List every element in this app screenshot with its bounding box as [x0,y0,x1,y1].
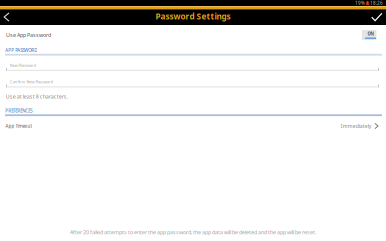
staticText: After 20 failed attempts to enter the ap… [70,229,316,236]
staticText: Immediately [341,122,372,129]
button[interactable]: Back [0,9,16,25]
staticText: Use at least 8 characters. [6,93,68,100]
staticText: App Timeout [5,123,32,129]
staticText: 19% [355,0,365,6]
staticText: ON [368,31,374,37]
staticText: APP PASSWORD [5,47,37,53]
button[interactable]: Use App Password [0,27,386,43]
staticText: New Password [10,62,37,68]
button[interactable]: Save [365,9,386,25]
button[interactable]: Confirm New Password [5,79,379,88]
staticText: PREFERENCES [5,108,32,114]
staticText: 18:26 [370,0,383,6]
button[interactable]: App Timeout [0,120,386,132]
staticText: Password Settings [155,11,230,22]
staticText: Use App Password [6,31,51,39]
button[interactable]: New Password [5,62,379,72]
staticText: Confirm New Password [10,79,54,84]
